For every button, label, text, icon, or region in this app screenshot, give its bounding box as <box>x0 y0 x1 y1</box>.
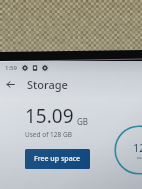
staticText: 15.09 <box>25 103 74 129</box>
staticText: GB <box>77 116 89 127</box>
staticText: Used of 128 GB <box>25 130 72 139</box>
staticText: Storage <box>27 77 68 92</box>
button[interactable]: Back <box>0 74 20 94</box>
staticText: us <box>137 155 142 160</box>
staticText: 12 <box>133 140 142 155</box>
staticText: Free up space <box>34 154 81 164</box>
button[interactable]: Free up space <box>25 149 90 169</box>
staticText: 1:59 <box>5 64 17 72</box>
